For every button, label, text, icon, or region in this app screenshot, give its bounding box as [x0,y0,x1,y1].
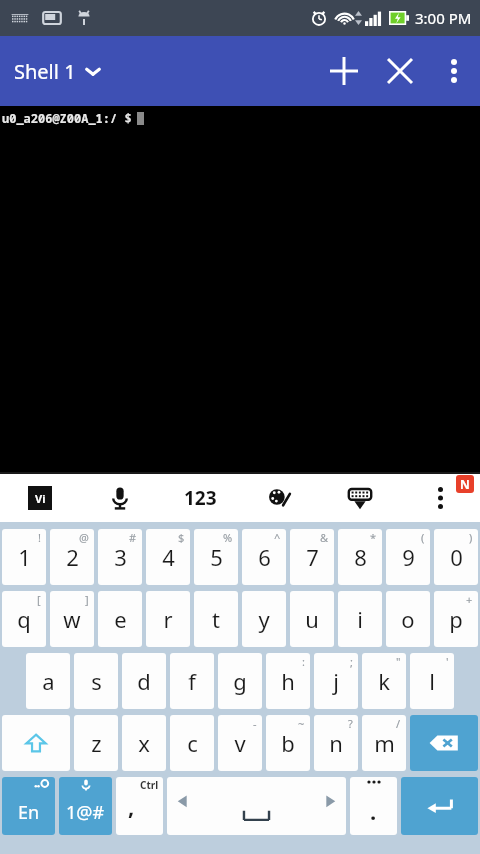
button[interactable]: ' [410,653,454,709]
button[interactable]: ^ [242,529,286,585]
staticText: ] [85,592,89,607]
staticText: 3:00 PM [415,8,472,28]
staticText: ' [446,654,449,669]
button[interactable]: ( [386,529,430,585]
button[interactable]: y [242,591,286,647]
button[interactable]: ] [50,591,94,647]
button[interactable]: New shell [316,43,372,99]
staticText: s [91,666,102,696]
button[interactable]: # [98,529,142,585]
button[interactable]: ; [314,653,358,709]
button[interactable]: More options [428,45,480,97]
staticText: 1@# [66,800,105,825]
button[interactable]: d [122,653,166,709]
button[interactable]: " [362,653,406,709]
button[interactable]: Symbols [59,777,112,835]
staticText: 2 [66,542,79,572]
button[interactable]: Close shell [372,43,428,99]
staticText: - [253,716,257,731]
button[interactable]: Vi mode [0,474,80,522]
staticText: q [17,604,31,634]
button[interactable]: r [146,591,190,647]
button[interactable]: i [338,591,382,647]
button[interactable]: Language [2,777,55,835]
button[interactable]: Enter [401,777,478,835]
button[interactable]: c [170,715,214,771]
button[interactable]: Shell 1 [14,36,102,106]
button[interactable]: + [434,591,478,647]
staticText: 5 [210,542,223,572]
button[interactable]: Comma [116,777,163,835]
button[interactable]: Space [167,777,346,835]
button[interactable]: u [290,591,334,647]
button[interactable]: & [290,529,334,585]
button[interactable]: s [74,653,118,709]
staticText: En [18,800,40,825]
button[interactable]: a [26,653,70,709]
staticText: f [188,666,196,696]
button[interactable]: f [170,653,214,709]
button[interactable]: e [98,591,142,647]
staticText: Ctrl [140,778,159,792]
staticText: [ [37,592,41,607]
button[interactable]: ? [314,715,358,771]
staticText: 0 [450,542,463,572]
staticText: ! [38,530,41,545]
button[interactable]: ! [2,529,46,585]
staticText: % [223,530,233,545]
staticText: ? [348,716,353,731]
staticText: ; [350,654,353,669]
staticText: Vi [35,491,46,506]
button[interactable]: Voice input [80,474,160,522]
button[interactable]: * [338,529,382,585]
button[interactable]: Numbers [160,474,240,522]
staticText: # [129,530,137,545]
staticText: 9 [402,542,415,572]
staticText: 7 [306,542,319,572]
staticText: y [258,604,270,634]
button[interactable]: More [400,474,480,522]
staticText: r [163,604,173,634]
button[interactable]: g [218,653,262,709]
button[interactable]: Shift [2,715,70,771]
staticText: . [370,796,377,826]
staticText: & [320,530,329,545]
staticText: l [429,666,435,696]
button[interactable]: - [218,715,262,771]
staticText: e [114,604,127,634]
staticText: Shell 1 [14,58,76,85]
staticText: " [396,654,401,669]
staticText: w [63,604,81,634]
staticText: 1 [18,542,31,572]
staticText: u0_a206@Z00A_1:/ $ [2,110,132,126]
staticText: i [357,604,363,634]
button[interactable]: t [194,591,238,647]
button[interactable]: : [266,653,310,709]
button[interactable]: Period [350,777,397,835]
staticText: x [138,728,150,758]
button[interactable]: Hide keyboard [320,474,400,522]
staticText: ^ [274,530,281,545]
button[interactable]: [ [2,591,46,647]
button[interactable]: Backspace [410,715,478,771]
button[interactable]: z [74,715,118,771]
staticText: n [329,728,343,758]
button[interactable]: $ [146,529,190,585]
staticText: 4 [162,542,175,572]
button[interactable]: ~ [266,715,310,771]
button[interactable]: @ [50,529,94,585]
staticText: 8 [354,542,367,572]
button[interactable]: x [122,715,166,771]
staticText: v [234,728,246,758]
button[interactable]: ) [434,529,478,585]
button[interactable]: o [386,591,430,647]
staticText: : [302,654,305,669]
staticText: p [449,604,463,634]
button[interactable]: Themes [240,474,320,522]
staticText: @ [79,530,89,545]
button[interactable]: / [362,715,406,771]
staticText: a [42,666,55,696]
button[interactable]: % [194,529,238,585]
staticText: k [378,666,390,696]
staticText: z [91,728,102,758]
